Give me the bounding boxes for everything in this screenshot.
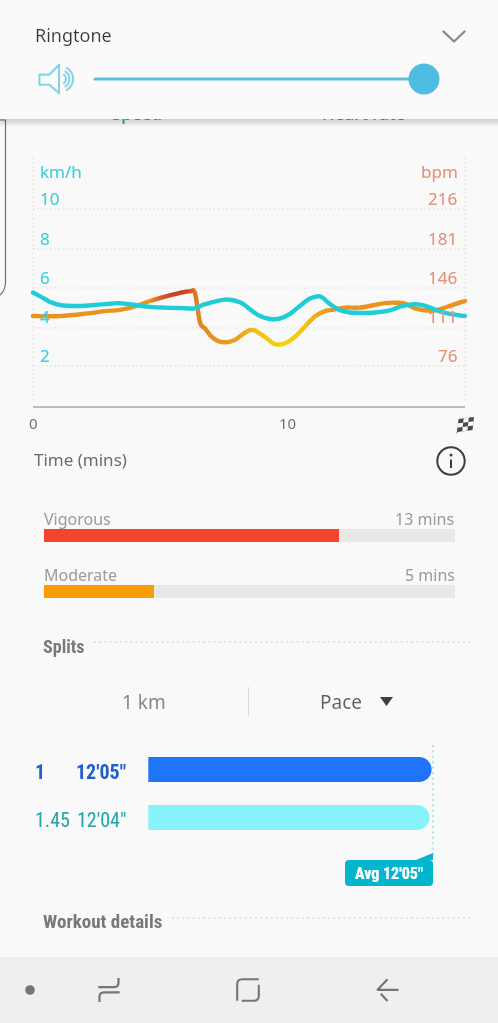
staticText: Splits <box>43 636 85 657</box>
staticText: 2 <box>40 344 50 367</box>
staticText: 216 <box>428 187 458 210</box>
staticText: 1 <box>35 760 46 783</box>
staticText: 12'04" <box>77 808 127 831</box>
staticText: 8 <box>40 227 50 250</box>
staticText: 111 <box>428 305 458 328</box>
button[interactable]: Collapse volume panel <box>432 14 476 58</box>
staticText: 10 <box>40 187 60 210</box>
staticText: 13 mins <box>395 508 455 530</box>
staticText: Moderate <box>44 564 118 586</box>
staticText: 1 km <box>122 689 166 715</box>
button[interactable]: Mute ringtone <box>30 58 76 98</box>
button[interactable]: Assistant <box>4 964 56 1016</box>
staticText: Ringtone <box>35 23 112 48</box>
button[interactable]: Home <box>222 964 274 1016</box>
staticText: Vigorous <box>44 508 111 530</box>
staticText: bpm <box>421 160 458 183</box>
staticText: 146 <box>428 266 458 289</box>
staticText: km/h <box>40 160 82 183</box>
staticText: 1.45 <box>35 808 70 831</box>
staticText: 5 mins <box>405 564 455 586</box>
button[interactable]: Information <box>429 439 473 483</box>
staticText: 4 <box>40 305 50 328</box>
staticText: Avg 12'05" <box>355 864 424 883</box>
staticText: Time (mins) <box>34 448 127 471</box>
button[interactable] <box>33 687 248 717</box>
staticText: 12'05" <box>76 760 127 783</box>
staticText: Speed <box>112 102 162 125</box>
staticText: 181 <box>428 227 458 250</box>
button[interactable]: Back <box>362 964 414 1016</box>
button[interactable]: Avg 12'05" <box>345 853 433 886</box>
button[interactable]: Recent apps <box>83 964 135 1016</box>
staticText: 0 <box>29 413 38 433</box>
staticText: 10 <box>279 413 297 433</box>
button[interactable] <box>249 687 465 717</box>
button[interactable] <box>0 757 498 783</box>
staticText: 6 <box>40 266 50 289</box>
button[interactable] <box>0 805 498 831</box>
button[interactable]: Ringtone volume <box>90 60 450 98</box>
staticText: Pace <box>320 689 362 715</box>
staticText: 76 <box>438 344 458 367</box>
staticText: Heart rate <box>322 102 406 125</box>
